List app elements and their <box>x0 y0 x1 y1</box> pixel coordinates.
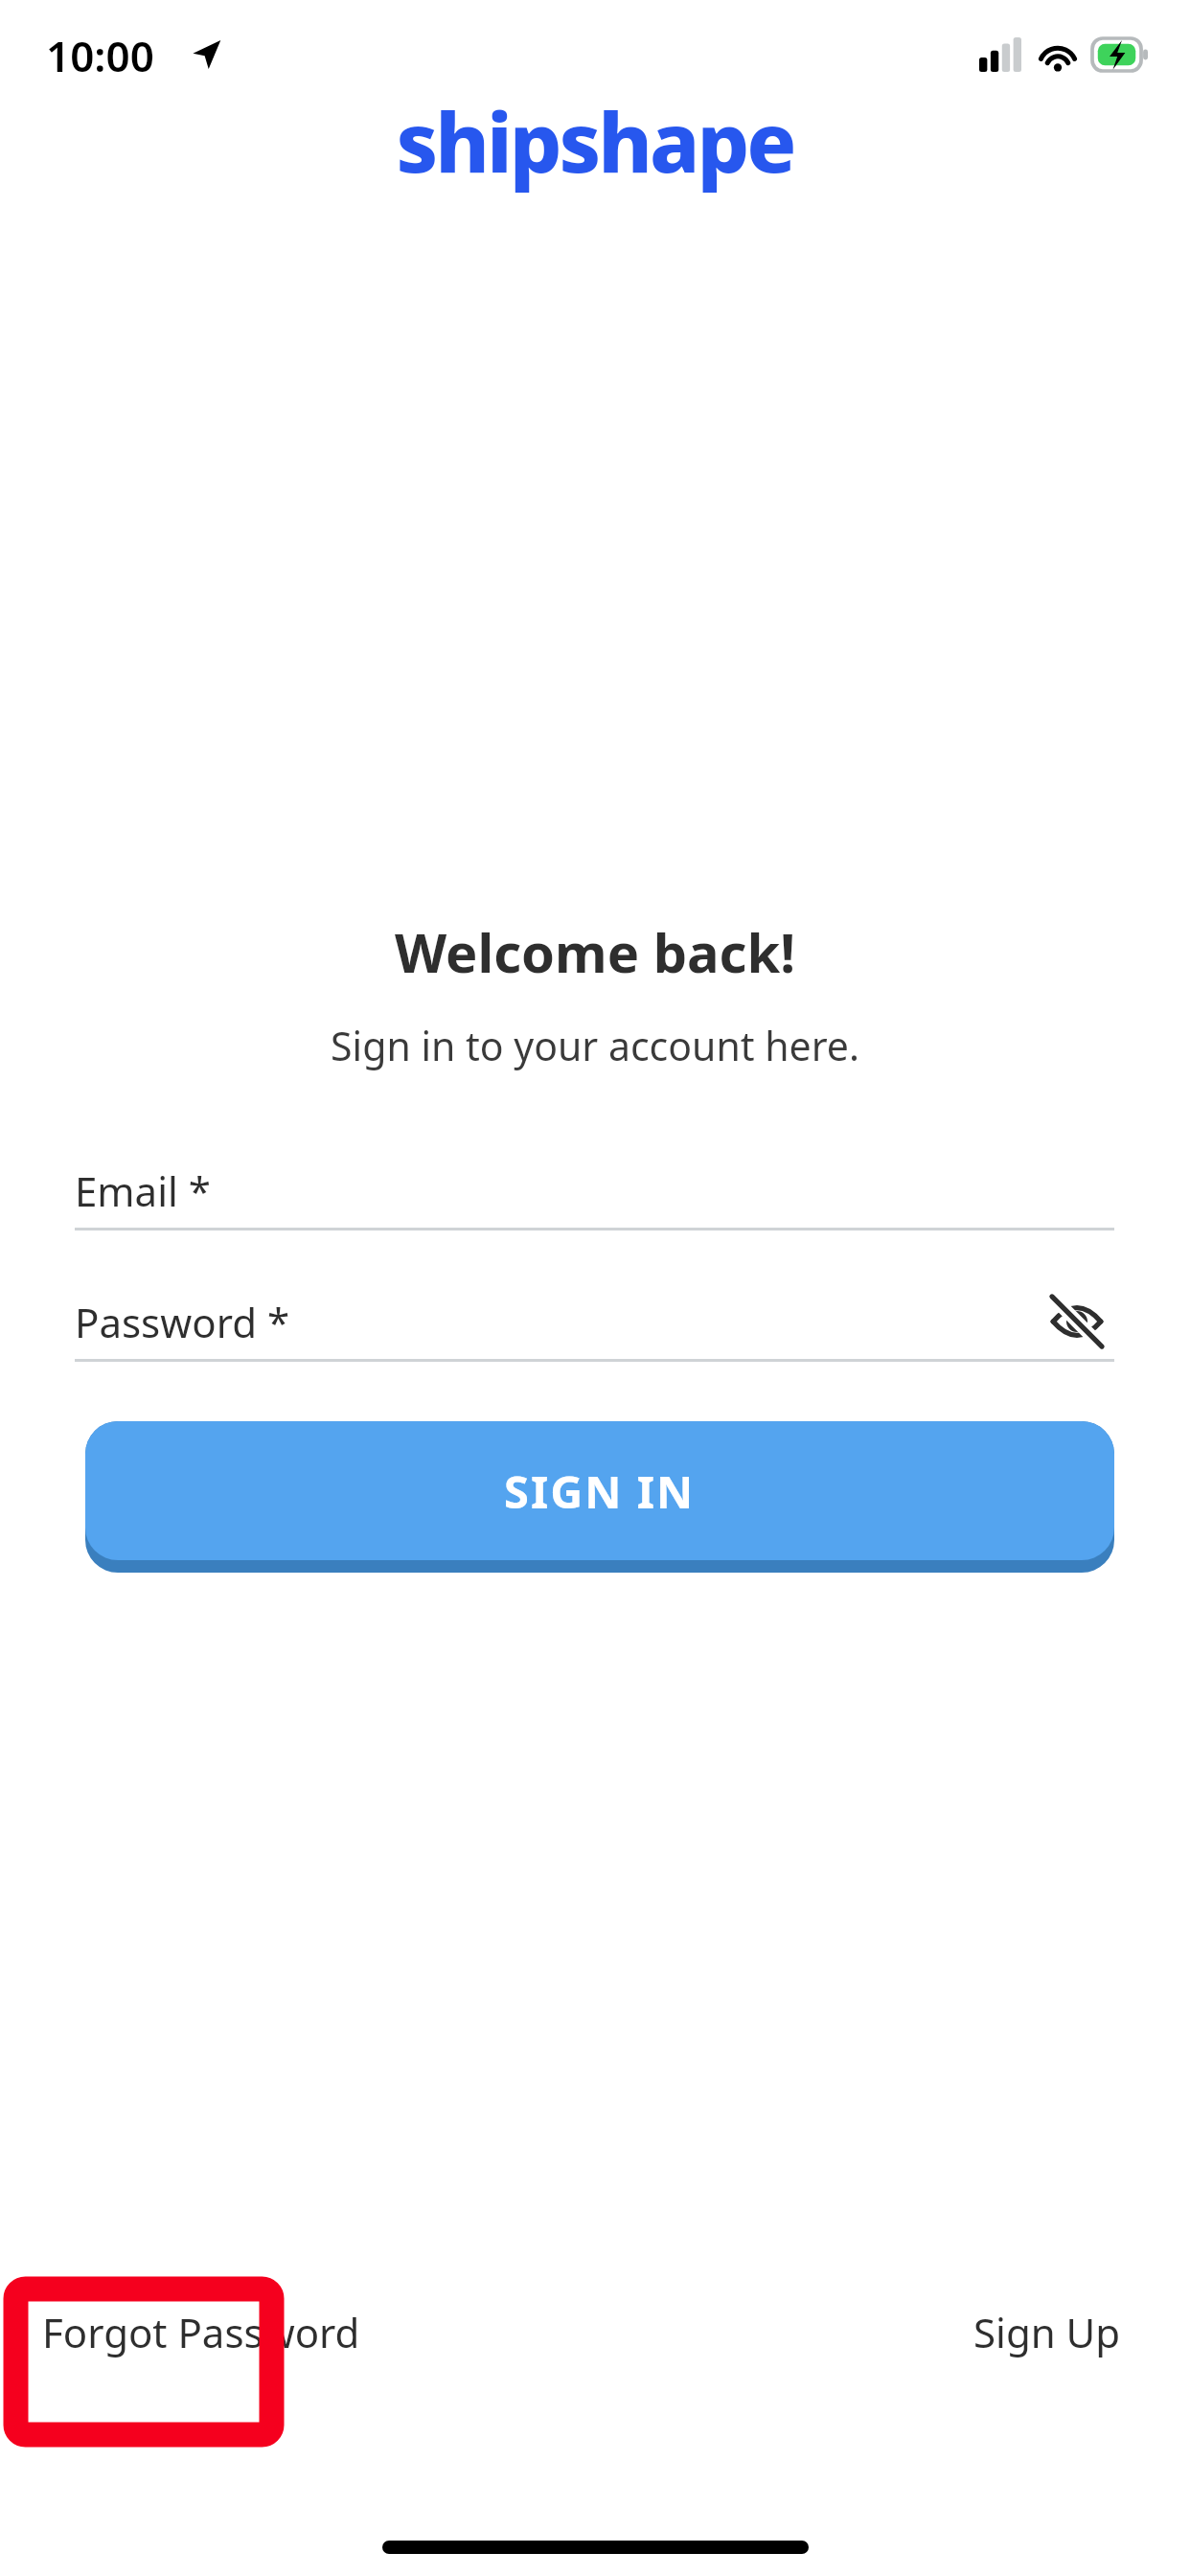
button[interactable]: Show password <box>1040 1284 1114 1359</box>
staticText: Forgot Password <box>42 2305 360 2359</box>
staticText: 10:00 <box>46 27 154 84</box>
staticText: Email * <box>75 1163 211 1218</box>
staticText: Sign Up <box>973 2305 1121 2359</box>
staticText: shipshape <box>0 84 1190 196</box>
button[interactable]: Forgot Password <box>42 2305 360 2359</box>
staticText: Password * <box>75 1295 290 1349</box>
staticText: Sign in to your account here. <box>0 1019 1190 1072</box>
staticText: SIGN IN <box>504 1460 696 1522</box>
button[interactable]: Sign Up <box>973 2305 1121 2359</box>
staticText: Welcome back! <box>0 915 1190 988</box>
button[interactable]: SIGN IN <box>85 1421 1114 1573</box>
